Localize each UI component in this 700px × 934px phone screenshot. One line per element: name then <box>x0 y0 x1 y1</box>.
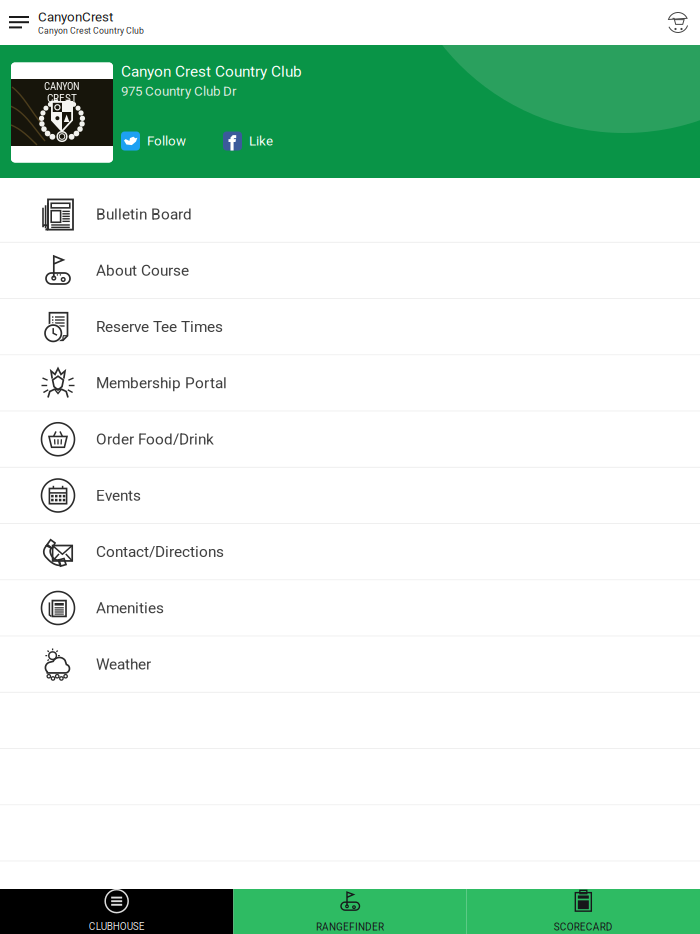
staticText: 975 Country Club Dr <box>121 83 237 99</box>
staticText: CanyonCrest <box>38 9 113 25</box>
button[interactable]: Contact/Directions <box>0 524 700 579</box>
button[interactable]: Order Food/Drink <box>0 412 700 467</box>
staticText: RANGEFINDER <box>316 921 384 933</box>
staticText: Canyon Crest Country Club <box>121 62 302 80</box>
button[interactable]: Membership Portal <box>0 355 700 411</box>
staticText: CLUBHOUSE <box>89 921 145 932</box>
button[interactable]: Weather <box>0 637 700 692</box>
staticText: SCORECARD <box>554 921 613 933</box>
button[interactable]: Events <box>0 468 700 523</box>
button[interactable]: RANGEFINDER <box>233 889 467 934</box>
button[interactable]: Bulletin Board <box>0 187 700 242</box>
button[interactable]: Reorder <box>656 0 700 45</box>
button[interactable]: About Course <box>0 243 700 298</box>
staticText: Weather <box>96 655 151 673</box>
staticText: About Course <box>96 261 189 279</box>
staticText: Follow <box>147 133 186 149</box>
button[interactable]: CLUBHOUSE <box>0 889 233 934</box>
button[interactable]: Like <box>223 131 273 150</box>
staticText: Like <box>249 133 273 149</box>
staticText: CREST <box>47 91 77 105</box>
staticText: Canyon Crest Country Club <box>38 26 144 36</box>
staticText: Order Food/Drink <box>96 430 214 448</box>
staticText: CANYON <box>44 80 80 92</box>
button[interactable]: Follow <box>121 131 186 150</box>
button[interactable]: Reserve Tee Times <box>0 299 700 354</box>
staticText: Reserve Tee Times <box>96 318 223 336</box>
staticText: Events <box>96 486 141 504</box>
staticText: Membership Portal <box>96 374 227 392</box>
button[interactable]: Menu <box>0 0 38 45</box>
button[interactable]: SCORECARD <box>467 889 700 934</box>
button[interactable]: Amenities <box>0 580 700 636</box>
staticText: Amenities <box>96 599 164 617</box>
staticText: Bulletin Board <box>96 205 192 223</box>
staticText: Contact/Directions <box>96 543 224 561</box>
